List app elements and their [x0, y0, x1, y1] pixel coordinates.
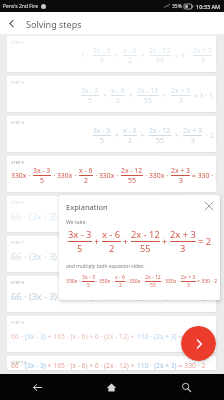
staticText: 2x - 12 — [131, 228, 160, 241]
button[interactable]: STEP 6 — [7, 196, 216, 232]
staticText: + — [139, 131, 147, 140]
staticText: 2x - 12 — [145, 274, 161, 281]
staticText: = 2 — [198, 235, 212, 248]
staticText: 330x ⋅ — [66, 278, 81, 285]
staticText: 2 — [119, 282, 122, 289]
staticText: 2x - 12 — [149, 126, 171, 135]
staticText: ⋅ 330x ⋅ — [53, 171, 77, 180]
staticText: = 330 ⋅ 2 — [192, 171, 216, 180]
staticText: 66 ⋅ — [11, 210, 29, 222]
staticText: ⋅ 330x ⋅ — [96, 278, 114, 285]
staticText: 3 — [179, 176, 183, 185]
button[interactable]: Home — [74, 374, 149, 400]
button[interactable]: STEP 10 — [7, 356, 216, 370]
staticText: 3x - 3 — [33, 166, 51, 175]
staticText: (3x - 3) — [25, 361, 46, 370]
staticText: 2x + 3 — [181, 274, 196, 281]
button[interactable]: Next step — [181, 326, 216, 361]
staticText: 330x ⋅ — [11, 171, 31, 180]
staticText: + — [139, 51, 147, 60]
staticText: STEP 4 — [11, 120, 24, 126]
staticText: = 330 ⋅ 2 — [177, 361, 206, 370]
staticText: 5 — [100, 136, 104, 145]
staticText: 2x - 12 — [121, 166, 143, 175]
button[interactable]: Back — [0, 12, 23, 35]
staticText: x - 6 — [102, 228, 121, 241]
staticText: 3 — [201, 56, 205, 65]
staticText: STEP 6 — [11, 200, 24, 206]
staticText: 2x + 3 — [193, 46, 212, 55]
staticText: Solving steps — [26, 18, 82, 30]
staticText: ⋅ 330x ⋅ — [162, 278, 180, 285]
staticText: = 3 ⋅ 1 — [192, 91, 214, 100]
button[interactable]: STEP 7 — [7, 236, 216, 272]
staticText: ⋅ 2 — [204, 131, 214, 140]
staticText: Pens's 2nd Fire — [3, 3, 38, 10]
staticText: STEP 8 — [11, 280, 24, 286]
staticText: 3 — [179, 96, 183, 105]
staticText: 3 — [191, 136, 195, 145]
button[interactable]: STEP 3 — [7, 76, 216, 112]
staticText: 66 ⋅ — [11, 250, 29, 262]
staticText: 2x - 12 — [137, 86, 159, 95]
staticText: STEP 9 — [11, 320, 24, 326]
staticText: 1 ⋅ — [81, 51, 91, 60]
button[interactable]: STEP 5 — [7, 156, 216, 192]
staticText: 55 — [144, 96, 152, 105]
staticText: 5 — [87, 282, 90, 289]
staticText: + — [101, 91, 109, 100]
staticText: = 330 ⋅ 2 — [197, 278, 218, 285]
staticText: + 165 ⋅ (x - 6) + 6 ⋅ (2x - 12) + — [46, 332, 137, 341]
staticText: 110 ⋅ (2x + 3) — [180, 290, 216, 302]
staticText: 10:33 AM — [196, 3, 220, 10]
staticText: 55 — [140, 242, 151, 255]
staticText: STEP 10 — [11, 360, 27, 366]
staticText: 3x - 3 — [82, 274, 95, 281]
staticText: 35% — [172, 3, 182, 10]
staticText: 55 — [150, 282, 156, 289]
staticText: + 165 ⋅ (x - 6) + 6 ⋅ (2x - 12) + — [46, 361, 137, 370]
staticText: x - 6 — [115, 274, 125, 281]
staticText: 2 — [84, 176, 88, 185]
button[interactable]: STEP 2 — [7, 36, 216, 72]
staticText: + — [173, 131, 181, 140]
staticText: STEP 3 — [11, 80, 24, 86]
staticText: x - 6 — [79, 166, 93, 175]
staticText: ⋅ 330x ⋅ — [126, 278, 144, 285]
button[interactable]: STEP 4 — [7, 116, 216, 152]
staticText: + 165 ⋅ (x - 6) + 6 ⋅ (2x - 12) + — [58, 210, 180, 222]
staticText: x - 6 — [123, 46, 137, 55]
staticText: + 165 ⋅ (x - 6) + 6 ⋅ (2x - 12) + — [58, 250, 180, 262]
button[interactable]: Back — [0, 374, 74, 400]
staticText: STEP 5 — [11, 160, 24, 166]
staticText: 2x + 3 — [171, 166, 190, 175]
staticText: + — [113, 51, 121, 60]
staticText: and multiply both equation sides: — [66, 263, 145, 270]
button[interactable]: Search — [149, 374, 224, 400]
staticText: 5 — [77, 242, 83, 255]
staticText: 5 — [88, 96, 92, 105]
staticText: 3x - 3 — [93, 126, 111, 135]
staticText: Explanation — [66, 202, 108, 212]
staticText: (3x - 3) — [29, 250, 58, 262]
staticText: We take: — [66, 218, 87, 225]
staticText: 2x + 3 — [170, 228, 196, 241]
staticText: (3x - 3) — [29, 290, 58, 302]
staticText: ⋅ 330x ⋅ — [95, 171, 119, 180]
staticText: 66 ⋅ — [11, 361, 25, 370]
staticText: 2x + 3 — [171, 86, 190, 95]
staticText: 66 ⋅ — [11, 290, 29, 302]
staticText: 110 ⋅ (2x + 3) — [137, 361, 177, 370]
staticText: 3 — [180, 242, 186, 255]
staticText: 110 ⋅ (2x + 3) — [137, 332, 177, 341]
staticText: 3x - 3 — [68, 228, 92, 241]
button[interactable]: STEP 8 — [7, 276, 216, 312]
button[interactable]: STEP 9 — [7, 316, 216, 352]
button[interactable]: Close — [198, 195, 220, 217]
staticText: 66 ⋅ — [11, 332, 25, 341]
staticText: x - 6 — [111, 86, 125, 95]
staticText: 3x - 3 — [81, 86, 99, 95]
staticText: ⋅ 330x ⋅ — [145, 171, 169, 180]
staticText: 2 — [109, 242, 115, 255]
